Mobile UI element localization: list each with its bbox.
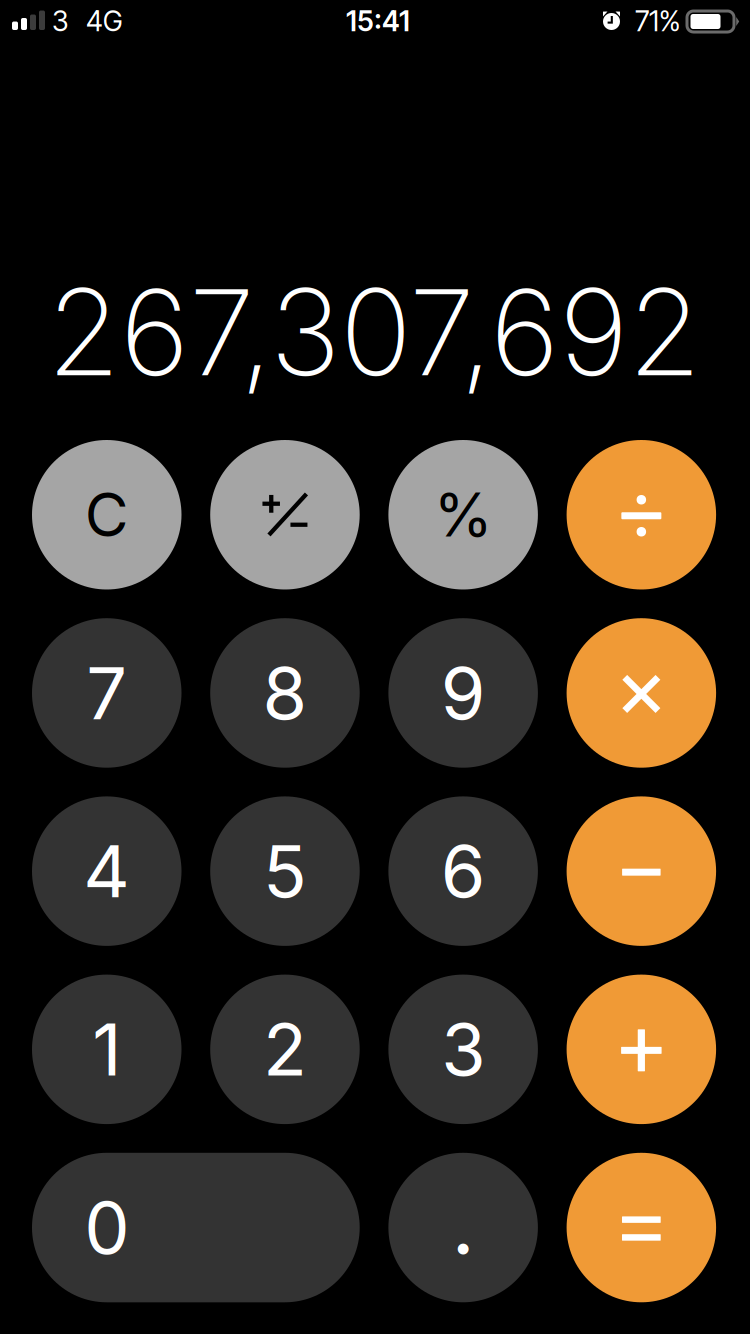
staticText: 71% bbox=[635, 4, 680, 38]
staticText: 4 bbox=[83, 828, 130, 915]
staticText: 1 bbox=[92, 1006, 121, 1093]
button[interactable]: 3 bbox=[388, 975, 538, 1124]
button[interactable]: 1 bbox=[32, 975, 181, 1124]
staticText: 6 bbox=[441, 828, 486, 915]
staticText: 7 bbox=[86, 649, 127, 736]
button[interactable]: Percent bbox=[388, 440, 538, 589]
staticText: 267,307,692 bbox=[47, 260, 701, 404]
staticText: 0 bbox=[84, 1184, 129, 1271]
staticText: 5 bbox=[263, 828, 307, 915]
button[interactable]: 6 bbox=[388, 796, 538, 946]
button[interactable]: 4 bbox=[32, 796, 181, 946]
staticText: 8 bbox=[262, 649, 307, 736]
staticText: C bbox=[85, 478, 129, 551]
button[interactable]: Multiply bbox=[567, 618, 716, 768]
button[interactable]: Subtract bbox=[567, 796, 716, 946]
button[interactable]: 8 bbox=[210, 618, 360, 768]
staticText: 9 bbox=[441, 649, 486, 736]
staticText: % bbox=[434, 478, 493, 551]
staticText: 15:41 bbox=[346, 4, 410, 38]
staticText: 3 bbox=[52, 4, 69, 38]
button[interactable]: 9 bbox=[388, 618, 538, 768]
button[interactable]: 0 bbox=[32, 1153, 360, 1302]
button[interactable]: Decimal point bbox=[388, 1153, 538, 1302]
button[interactable]: Divide bbox=[567, 440, 716, 589]
button[interactable]: Clear bbox=[32, 440, 181, 589]
staticText: 3 bbox=[441, 1006, 485, 1093]
staticText: . bbox=[451, 1173, 475, 1273]
button[interactable]: 7 bbox=[32, 618, 181, 768]
staticText: 2 bbox=[263, 1006, 307, 1093]
button[interactable]: Equals bbox=[567, 1153, 716, 1302]
button[interactable]: 2 bbox=[210, 975, 360, 1124]
button[interactable]: 5 bbox=[210, 796, 360, 946]
button[interactable]: Add bbox=[567, 975, 716, 1124]
staticText: 4G bbox=[86, 4, 122, 38]
button[interactable]: Plus minus bbox=[210, 440, 360, 589]
